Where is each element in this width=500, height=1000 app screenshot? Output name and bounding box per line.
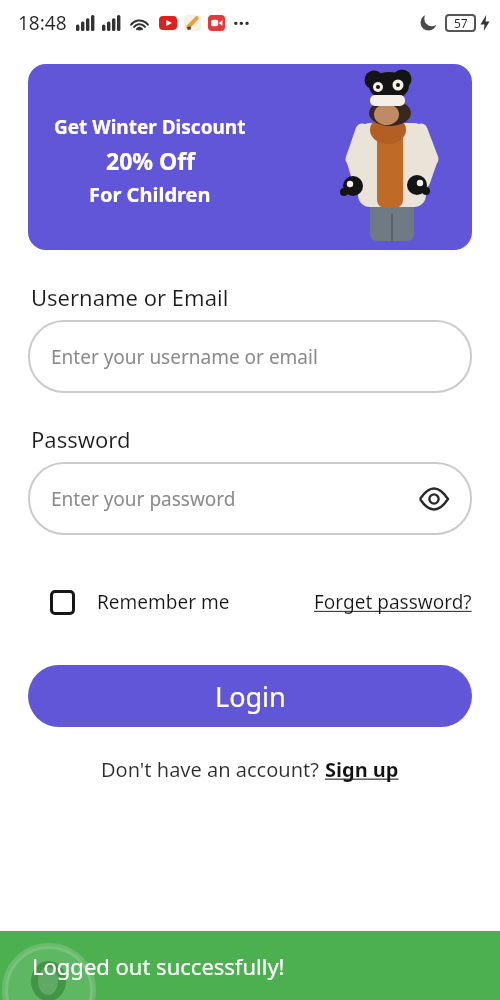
staticText: 57 (454, 15, 468, 31)
staticText: 18:48 (18, 10, 67, 36)
button[interactable]: Login (28, 665, 472, 727)
button[interactable]: Enter your username or email (28, 320, 472, 393)
staticText: Enter your password (51, 486, 236, 512)
staticText: Username or Email (31, 282, 229, 312)
button[interactable]: Sign up (325, 756, 399, 783)
staticText: Login (215, 678, 286, 715)
staticText: Remember me (97, 589, 230, 615)
staticText: Don't have an account? (101, 756, 325, 783)
staticText: Password (31, 424, 131, 454)
staticText: Enter your username or email (51, 344, 318, 370)
staticText: 20% Off (106, 145, 195, 176)
button[interactable]: Get Winter Discount (28, 64, 472, 250)
button[interactable]: Enter your password (28, 462, 472, 535)
staticText: Logged out successfully! (32, 951, 285, 981)
staticText: ··· (233, 9, 250, 36)
staticText: Get Winter Discount (54, 114, 246, 140)
button[interactable] (50, 590, 75, 615)
button[interactable]: Forget password? (314, 589, 472, 615)
staticText: For Children (89, 181, 211, 208)
